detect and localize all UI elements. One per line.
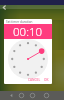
button[interactable]: Back <box>1 4 8 11</box>
button[interactable]: Home <box>18 92 25 99</box>
staticText: CANCEL <box>28 78 41 82</box>
staticText: 00:10 <box>13 24 43 39</box>
button[interactable]: Back <box>8 92 15 99</box>
button[interactable]: OK <box>42 78 52 82</box>
staticText: OK <box>44 78 49 82</box>
staticText: Set timer duration <box>6 20 33 24</box>
button[interactable]: Recents <box>29 92 36 99</box>
button[interactable]: CANCEL <box>27 78 42 82</box>
button[interactable]: Menu <box>43 92 50 99</box>
